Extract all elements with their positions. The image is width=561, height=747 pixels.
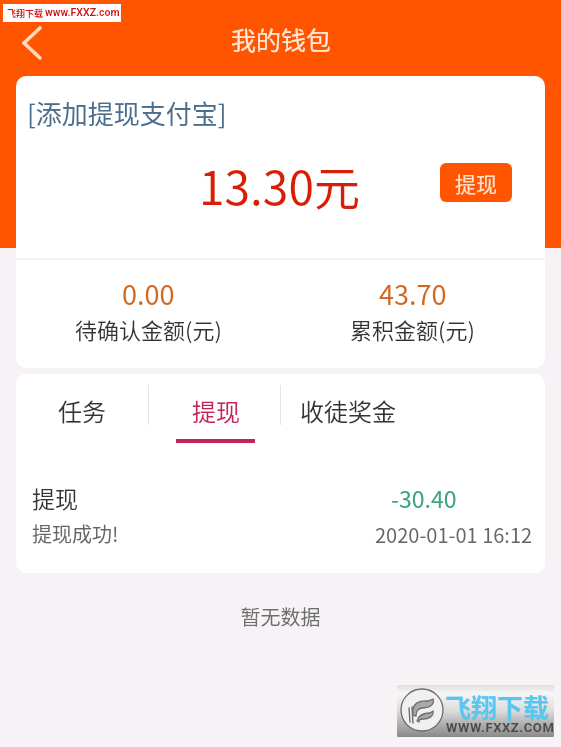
staticText: 待确认金额(元) — [75, 313, 222, 345]
staticText: 2020-01-01 16:12 — [375, 520, 533, 549]
staticText: 飞翔下载 — [7, 7, 44, 20]
staticText: 我的钱包 — [231, 21, 332, 57]
button[interactable]: Back — [8, 19, 56, 67]
staticText: 提现成功! — [32, 519, 119, 548]
staticText: WWW.FXXZ.COM — [446, 720, 554, 735]
button[interactable]: [添加提现支付宝] — [27, 94, 227, 132]
staticText: 0.00 — [122, 274, 175, 313]
staticText: www.FXXZ.com — [45, 6, 120, 18]
staticText: 任务 — [58, 393, 106, 428]
staticText: 飞翔下载 — [445, 688, 550, 726]
button[interactable]: 提现 — [16, 452, 545, 571]
staticText: 提现 — [32, 481, 78, 514]
staticText: 13.30元 — [199, 152, 360, 219]
staticText: 提现 — [455, 168, 497, 198]
staticText: 收徒奖金 — [300, 393, 396, 428]
button[interactable]: 提现 — [149, 374, 282, 452]
button[interactable]: 43.70 — [280, 260, 545, 368]
button[interactable]: 0.00 — [16, 260, 280, 368]
button[interactable]: 提现 — [440, 163, 512, 202]
staticText: -30.40 — [391, 481, 457, 514]
staticText: 43.70 — [379, 274, 447, 313]
staticText: 累积金额(元) — [350, 313, 475, 345]
staticText: 暂无数据 — [0, 602, 561, 631]
button[interactable]: 任务 — [16, 374, 148, 452]
button[interactable]: 收徒奖金 — [282, 374, 413, 452]
staticText: 提现 — [192, 393, 240, 428]
